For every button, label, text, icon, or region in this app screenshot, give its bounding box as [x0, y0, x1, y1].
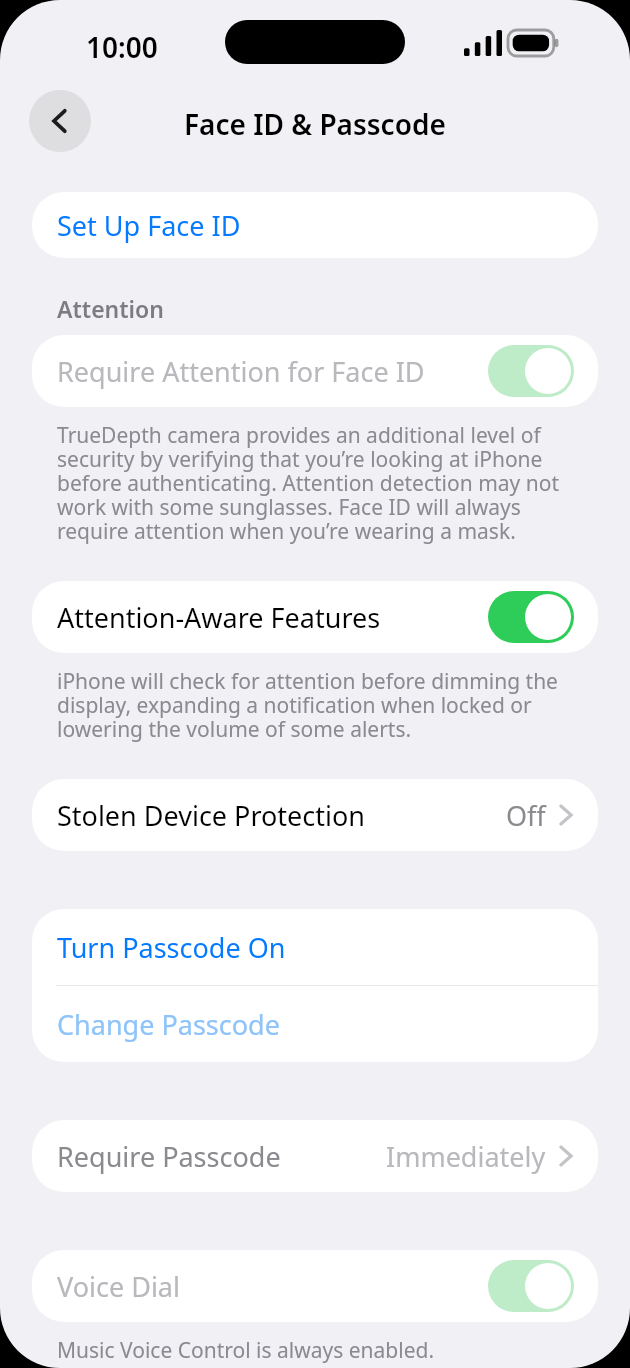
staticText: Attention-Aware Features	[57, 599, 488, 636]
button[interactable]: Toggle	[488, 1260, 574, 1312]
staticText: Change Passcode	[57, 1006, 280, 1043]
staticText: Turn Passcode On	[57, 929, 286, 966]
button[interactable]: Voice Dial	[32, 1250, 598, 1322]
button[interactable]: Change Passcode	[32, 986, 598, 1062]
staticText: Set Up Face ID	[57, 207, 241, 244]
staticText: Attention	[57, 293, 164, 324]
staticText: Require Passcode	[57, 1138, 386, 1175]
staticText: Require Attention for Face ID	[57, 353, 488, 390]
staticText: Face ID & Passcode	[184, 105, 446, 143]
staticText: Immediately	[386, 1138, 546, 1175]
button[interactable]: Stolen Device Protection	[32, 779, 598, 851]
button[interactable]: Require Passcode	[32, 1120, 598, 1192]
button[interactable]: Toggle	[488, 591, 574, 643]
staticText: iPhone will check for attention before d…	[57, 667, 580, 744]
button[interactable]: Toggle	[488, 345, 574, 397]
button[interactable]: Require Attention for Face ID	[32, 335, 598, 407]
staticText: TrueDepth camera provides an additional …	[57, 421, 580, 546]
button[interactable]: Turn Passcode On	[32, 909, 598, 985]
staticText: Music Voice Control is always enabled.	[57, 1336, 435, 1365]
staticText: Voice Dial	[57, 1268, 488, 1305]
staticText: Stolen Device Protection	[57, 797, 506, 834]
staticText: Off	[506, 797, 546, 834]
button[interactable]: Back	[29, 90, 91, 152]
button[interactable]: Attention-Aware Features	[32, 581, 598, 653]
button[interactable]: Set Up Face ID	[32, 192, 598, 258]
staticText: 10:00	[86, 28, 158, 66]
